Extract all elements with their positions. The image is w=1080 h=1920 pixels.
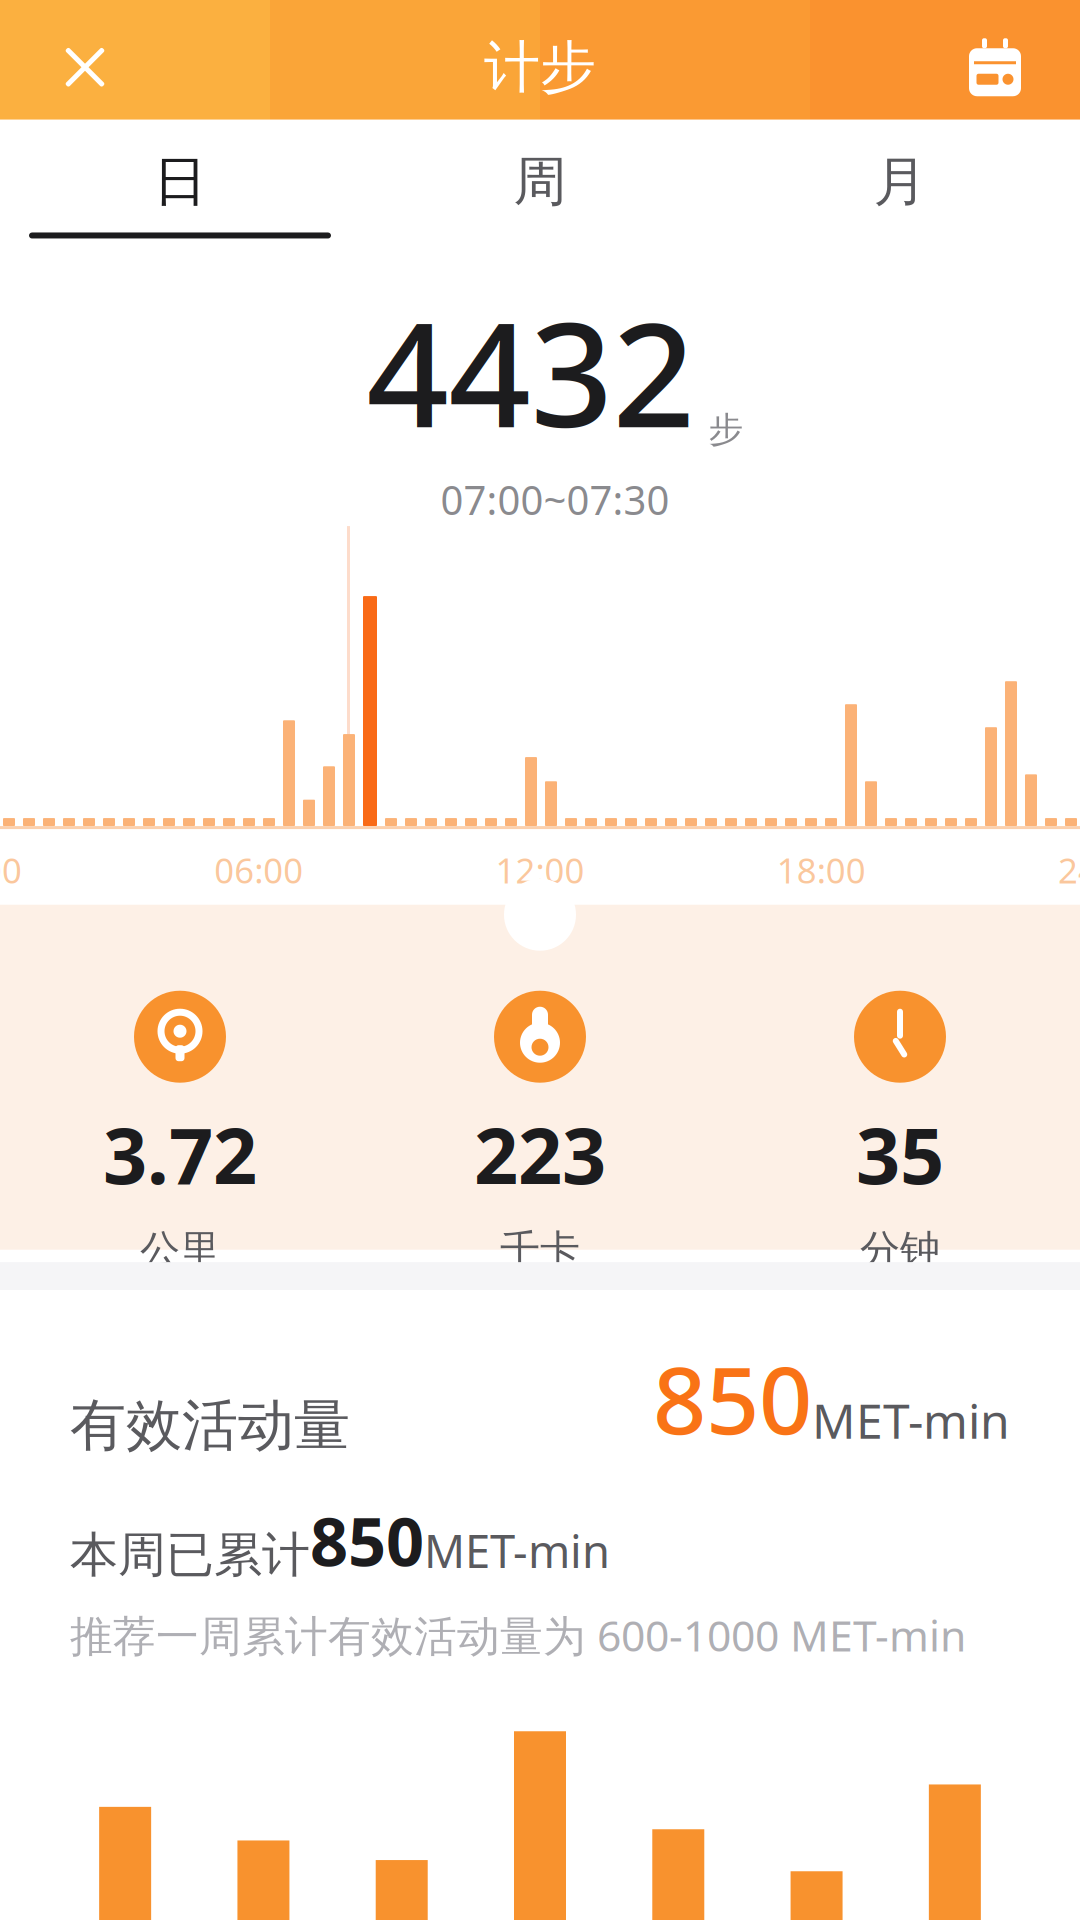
staticText: MET-min [812,1388,1010,1452]
button[interactable]: 周 [360,139,720,249]
staticText: 周 [513,149,566,214]
staticText: 18:00 [777,847,866,893]
staticText: 24:00 [1058,847,1080,893]
button[interactable]: Close [30,17,140,117]
button[interactable]: 月 [720,139,1080,249]
staticText: 3.72 [103,1103,257,1205]
staticText: 223 [474,1103,606,1205]
staticText: 本周已累计 [70,1526,310,1585]
staticText: 千卡 [500,1225,580,1274]
staticText: 步 [708,408,743,451]
staticText: 计步 [484,33,596,102]
staticText: 分钟 [860,1225,940,1274]
staticText: 07:00~07:30 [440,473,669,526]
staticText: 日 [153,149,206,214]
staticText: 850 [653,1336,812,1460]
staticText: 有效活动量 [70,1391,350,1460]
staticText: 06:00 [214,847,303,893]
button[interactable]: 日 [0,139,360,249]
staticText: 推荐一周累计有效活动量为 600-1000 MET-min [70,1607,966,1663]
button[interactable]: Calendar [940,17,1050,117]
staticText: MET-min [424,1520,610,1581]
staticText: 12:00 [495,847,584,893]
staticText: 公里 [140,1225,220,1274]
staticText: 35 [856,1103,944,1205]
staticText: 850 [310,1496,424,1585]
staticText: 00:00 [0,847,22,893]
staticText: 月 [873,149,926,214]
staticText: 4432 [366,276,694,467]
